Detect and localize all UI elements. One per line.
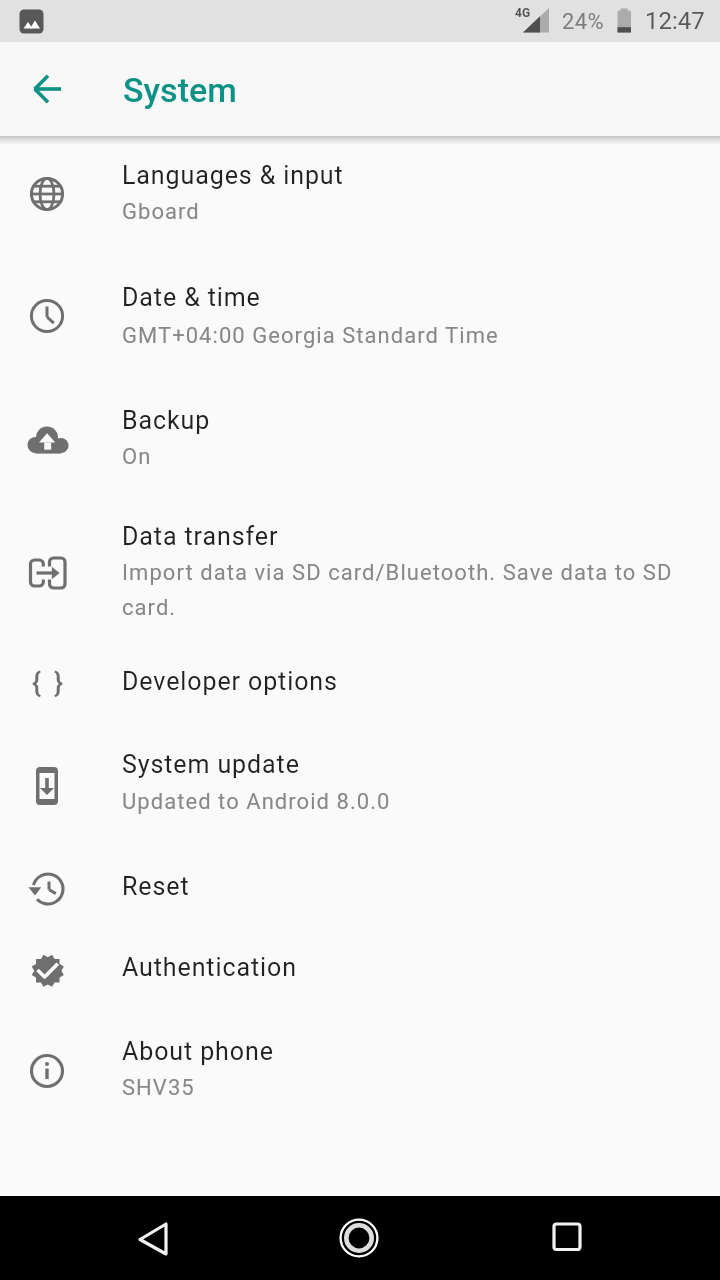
staticText: SHV35 — [122, 1075, 195, 1101]
staticText: GMT+04:00 Georgia Standard Time — [122, 323, 499, 349]
button[interactable] — [335, 1214, 383, 1262]
staticText: Gboard — [122, 199, 200, 225]
staticText: 4G — [515, 6, 531, 20]
staticText: Authentication — [122, 953, 297, 982]
staticText: Reset — [122, 872, 190, 901]
staticText: { — [32, 667, 42, 699]
staticText: Date & time — [122, 283, 261, 312]
staticText: Backup — [122, 406, 211, 435]
button[interactable]: Backup — [0, 377, 720, 499]
staticText: Import data via SD card/Bluetooth. Save … — [122, 560, 673, 586]
button[interactable]: System update — [0, 724, 720, 846]
staticText: } — [54, 667, 64, 699]
button[interactable]: Data transfer — [0, 499, 720, 642]
button[interactable]: Languages & input — [0, 133, 720, 255]
staticText: On — [122, 444, 152, 470]
staticText: About phone — [122, 1037, 274, 1066]
staticText: Data transfer — [122, 522, 279, 551]
button[interactable]: Date & time — [0, 255, 720, 377]
staticText: card. — [122, 595, 177, 621]
staticText: System — [123, 70, 237, 110]
staticText: Updated to Android 8.0.0 — [122, 789, 391, 815]
button[interactable] — [130, 1212, 178, 1260]
button[interactable]: Reset — [0, 846, 720, 928]
button[interactable]: Developer options — [0, 642, 720, 724]
staticText: Languages & input — [122, 161, 344, 190]
staticText: 24% — [562, 9, 605, 35]
staticText: System update — [122, 750, 300, 779]
button[interactable] — [543, 1212, 591, 1260]
button[interactable]: Authentication — [0, 928, 720, 1010]
staticText: Developer options — [122, 667, 338, 696]
staticText: 12:47 — [645, 7, 705, 35]
button[interactable]: About phone — [0, 1010, 720, 1132]
button[interactable] — [24, 67, 68, 111]
